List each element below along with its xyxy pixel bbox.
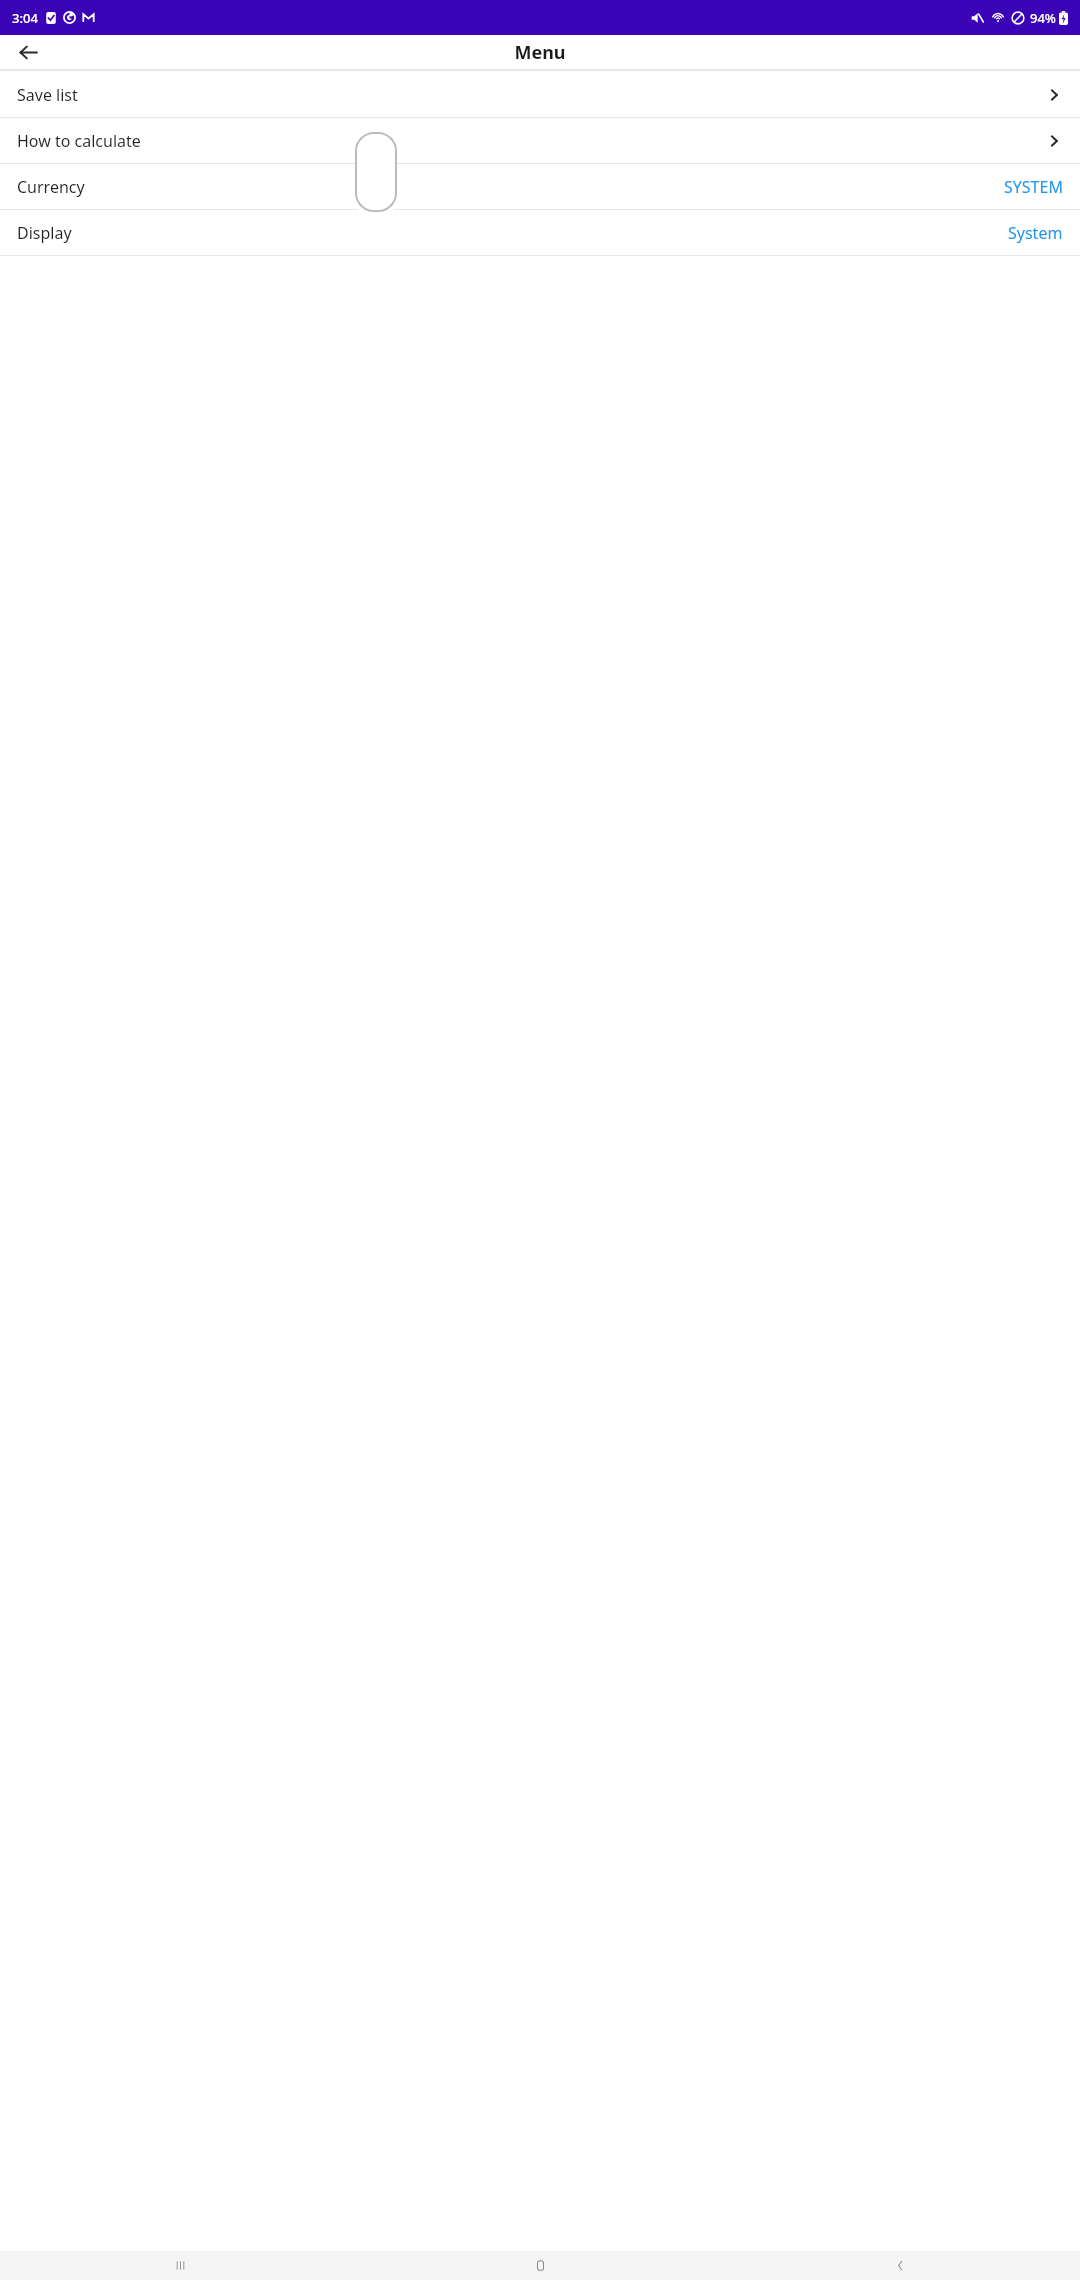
button[interactable]: Back <box>8 35 48 69</box>
button[interactable]: Currency <box>0 164 1080 209</box>
staticText: System <box>1008 222 1063 244</box>
staticText: Currency <box>17 176 85 198</box>
button[interactable]: Save list <box>0 72 1080 117</box>
button[interactable]: How to calculate <box>0 118 1080 163</box>
staticText: Menu <box>514 40 566 65</box>
staticText: Display <box>17 222 72 244</box>
staticText: 3:04 <box>12 9 38 27</box>
staticText: SYSTEM <box>1004 176 1063 198</box>
staticText: Save list <box>17 84 78 106</box>
button[interactable]: Recents <box>0 2251 360 2280</box>
staticText: How to calculate <box>17 130 141 152</box>
button[interactable]: Display <box>0 210 1080 255</box>
staticText: 94% <box>1030 9 1056 27</box>
button[interactable]: Home <box>360 2251 720 2280</box>
